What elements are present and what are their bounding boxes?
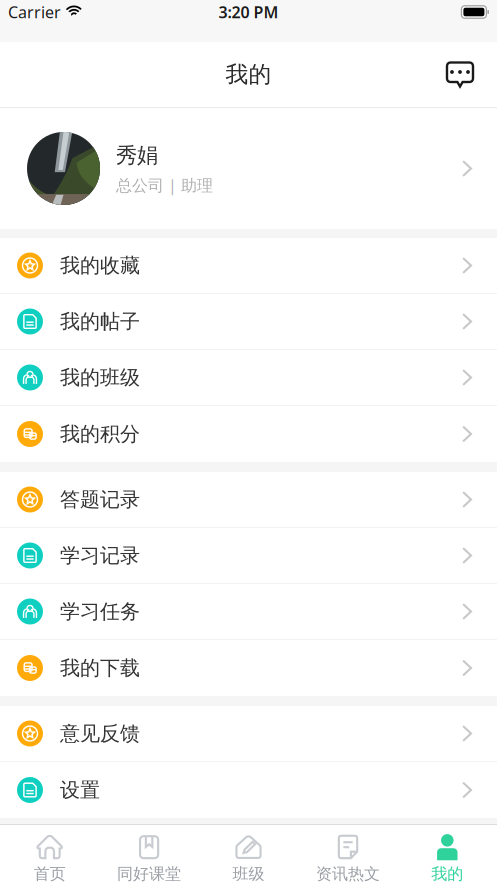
- staticText: 同好课堂: [117, 864, 181, 883]
- staticText: 秀娟: [116, 142, 158, 168]
- staticText: 我的班级: [60, 365, 140, 390]
- staticText: 我的收藏: [60, 253, 140, 278]
- button[interactable]: 意见反馈: [0, 706, 497, 762]
- staticText: 答题记录: [60, 487, 140, 512]
- button[interactable]: 秀娟: [0, 108, 497, 229]
- button[interactable]: 我的: [398, 825, 497, 883]
- button[interactable]: 同好课堂: [99, 825, 199, 883]
- staticText: 学习记录: [60, 543, 140, 568]
- staticText: 设置: [60, 778, 100, 802]
- staticText: 我的下载: [60, 656, 140, 680]
- staticText: 我的积分: [60, 422, 140, 446]
- staticText: 学习任务: [60, 599, 140, 624]
- button[interactable]: 首页: [0, 825, 99, 883]
- button[interactable]: 班级: [199, 825, 298, 883]
- staticText: Carrier: [8, 1, 61, 23]
- button[interactable]: 答题记录: [0, 472, 497, 528]
- staticText: 我的帖子: [60, 309, 140, 334]
- staticText: 资讯热文: [316, 864, 380, 883]
- button[interactable]: 学习记录: [0, 528, 497, 584]
- button[interactable]: Messages: [438, 52, 482, 96]
- button[interactable]: 资讯热文: [298, 825, 398, 883]
- button[interactable]: 我的帖子: [0, 294, 497, 350]
- button[interactable]: 我的班级: [0, 350, 497, 406]
- staticText: 3:20 PM: [218, 1, 278, 23]
- staticText: 我的: [431, 864, 463, 883]
- staticText: 总公司 | 助理: [116, 174, 213, 196]
- button[interactable]: 设置: [0, 762, 497, 818]
- staticText: 班级: [232, 864, 264, 883]
- button[interactable]: 我的下载: [0, 640, 497, 696]
- button[interactable]: 我的积分: [0, 406, 497, 462]
- staticText: 意见反馈: [60, 721, 140, 746]
- staticText: 首页: [34, 864, 66, 883]
- button[interactable]: 我的收藏: [0, 238, 497, 294]
- button[interactable]: 学习任务: [0, 584, 497, 640]
- staticText: 我的: [225, 61, 271, 88]
